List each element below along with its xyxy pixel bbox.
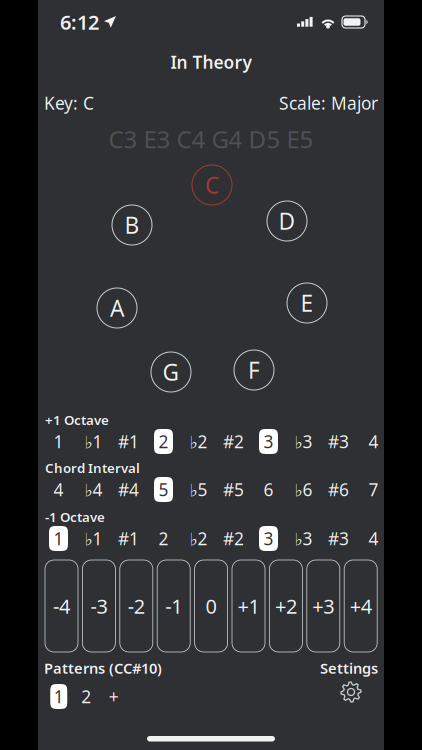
- button[interactable]: +1: [232, 560, 265, 652]
- staticText: B: [124, 210, 139, 240]
- button[interactable]: ♭2: [187, 429, 210, 454]
- staticText: +1 Octave: [45, 411, 109, 429]
- button[interactable]: 2: [154, 429, 173, 454]
- staticText: +2: [275, 593, 297, 619]
- staticText: 1: [53, 430, 63, 453]
- button[interactable]: 2: [154, 526, 173, 551]
- staticText: 4: [368, 430, 378, 453]
- button[interactable]: 1: [50, 684, 67, 709]
- staticText: ♭1: [84, 527, 102, 550]
- staticText: -2: [128, 593, 145, 619]
- staticText: 3: [263, 430, 273, 453]
- staticText: +: [109, 685, 119, 708]
- staticText: 6: [263, 478, 273, 501]
- staticText: 0: [206, 593, 217, 619]
- button[interactable]: 3: [259, 526, 278, 551]
- button[interactable]: 4: [364, 526, 383, 551]
- button[interactable]: 4: [49, 477, 68, 502]
- staticText: E: [300, 288, 313, 318]
- button[interactable]: 6: [259, 477, 278, 502]
- button[interactable]: D: [267, 201, 307, 241]
- staticText: ♭5: [189, 478, 207, 501]
- button[interactable]: E: [287, 283, 327, 323]
- staticText: 4: [53, 478, 63, 501]
- button[interactable]: #4: [117, 477, 140, 502]
- staticText: 1: [54, 685, 64, 708]
- staticText: 5: [158, 478, 168, 501]
- staticText: Settings: [320, 658, 378, 678]
- button[interactable]: ♭2: [187, 526, 210, 551]
- button[interactable]: +4: [344, 560, 377, 652]
- button[interactable]: #6: [327, 477, 350, 502]
- button[interactable]: 1: [49, 526, 68, 551]
- staticText: 6:12: [60, 9, 99, 35]
- button[interactable]: #3: [327, 429, 350, 454]
- button[interactable]: B: [112, 205, 152, 245]
- staticText: ♭2: [189, 527, 207, 550]
- button[interactable]: ♭3: [292, 429, 315, 454]
- staticText: #5: [223, 478, 244, 501]
- button[interactable]: C: [192, 165, 232, 205]
- staticText: #2: [223, 430, 244, 453]
- button[interactable]: Settings: [340, 681, 362, 703]
- button[interactable]: -4: [45, 560, 78, 652]
- button[interactable]: 0: [195, 560, 228, 652]
- button[interactable]: -2: [120, 560, 153, 652]
- button[interactable]: #5: [222, 477, 245, 502]
- button[interactable]: -3: [82, 560, 115, 652]
- button[interactable]: G: [151, 352, 191, 392]
- button[interactable]: F: [234, 350, 274, 390]
- button[interactable]: ♭3: [292, 526, 315, 551]
- button[interactable]: #2: [222, 526, 245, 551]
- staticText: C: [205, 170, 219, 200]
- staticText: +1: [237, 593, 259, 619]
- staticText: #3: [328, 527, 349, 550]
- button[interactable]: ♭4: [82, 477, 105, 502]
- staticText: ♭4: [84, 478, 102, 501]
- button[interactable]: 7: [364, 477, 383, 502]
- button[interactable]: 2: [78, 684, 95, 709]
- button[interactable]: #3: [327, 526, 350, 551]
- staticText: ♭6: [294, 478, 312, 501]
- button[interactable]: +3: [307, 560, 340, 652]
- staticText: F: [248, 355, 260, 385]
- staticText: #2: [223, 527, 244, 550]
- staticText: -1 Octave: [45, 508, 105, 526]
- button[interactable]: 1: [49, 429, 68, 454]
- staticText: 4: [368, 527, 378, 550]
- staticText: In Theory: [170, 50, 251, 73]
- button[interactable]: #2: [222, 429, 245, 454]
- staticText: #6: [328, 478, 349, 501]
- button[interactable]: 3: [259, 429, 278, 454]
- staticText: Chord Interval: [45, 459, 140, 477]
- staticText: 2: [81, 685, 91, 708]
- button[interactable]: ♭6: [292, 477, 315, 502]
- button[interactable]: #1: [117, 429, 140, 454]
- staticText: +3: [312, 593, 334, 619]
- staticText: 1: [53, 527, 63, 550]
- button[interactable]: -1: [157, 560, 190, 652]
- button[interactable]: ♭5: [187, 477, 210, 502]
- staticText: -4: [53, 593, 70, 619]
- button[interactable]: A: [97, 288, 137, 328]
- button[interactable]: +2: [269, 560, 302, 652]
- button[interactable]: ♭1: [82, 526, 105, 551]
- staticText: Scale: Major: [279, 91, 378, 114]
- staticText: ♭1: [84, 430, 102, 453]
- button[interactable]: #1: [117, 526, 140, 551]
- staticText: Key: C: [44, 91, 94, 114]
- staticText: -3: [90, 593, 107, 619]
- staticText: 2: [158, 527, 168, 550]
- staticText: C3 E3 C4 G4 D5 E5: [108, 123, 313, 155]
- button[interactable]: ♭1: [82, 429, 105, 454]
- staticText: D: [278, 206, 295, 236]
- staticText: Patterns (CC#10): [44, 658, 162, 678]
- staticText: #1: [118, 430, 139, 453]
- staticText: 2: [158, 430, 168, 453]
- button[interactable]: 5: [154, 477, 173, 502]
- staticText: ♭2: [189, 430, 207, 453]
- staticText: #3: [328, 430, 349, 453]
- button[interactable]: 4: [364, 429, 383, 454]
- button[interactable]: +: [105, 684, 122, 709]
- staticText: #4: [118, 478, 139, 501]
